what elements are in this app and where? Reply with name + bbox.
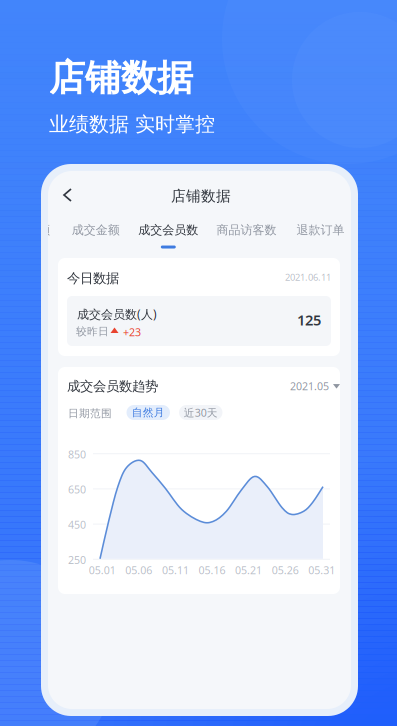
- staticText: 125: [297, 310, 321, 329]
- staticText: 450: [68, 518, 86, 532]
- staticText: 成交金额: [72, 223, 120, 237]
- staticText: 额: [38, 223, 50, 237]
- staticText: 05.21: [235, 563, 262, 577]
- button[interactable]: 额: [8, 217, 80, 243]
- staticText: 05.06: [125, 563, 152, 577]
- staticText: 2021.05: [290, 379, 329, 393]
- button[interactable]: 成交金额: [60, 217, 132, 243]
- staticText: 成交会员数趋势: [67, 378, 158, 394]
- staticText: 自然月: [132, 406, 165, 419]
- staticText: 业绩数据 实时掌控: [49, 112, 215, 137]
- button[interactable]: 近30天: [179, 405, 222, 420]
- staticText: 05.16: [198, 563, 225, 577]
- button[interactable]: 商品访客数: [210, 217, 282, 243]
- staticText: 2021.06.11: [285, 271, 331, 283]
- button[interactable]: 2021.05: [290, 379, 340, 393]
- staticText: 成交会员数: [138, 223, 198, 237]
- staticText: 退款订单: [296, 223, 344, 237]
- staticText: +23: [123, 325, 141, 339]
- staticText: 店铺数据: [49, 56, 193, 100]
- staticText: 今日数据: [67, 270, 119, 286]
- button[interactable]: 自然月: [126, 405, 170, 420]
- staticText: 250: [68, 553, 86, 567]
- button[interactable]: 返回: [54, 181, 82, 209]
- staticText: 店铺数据: [171, 187, 231, 205]
- staticText: 650: [68, 482, 86, 497]
- staticText: 商品访客数: [216, 223, 276, 237]
- staticText: 05.11: [162, 563, 189, 577]
- staticText: 成交会员数(人): [77, 306, 157, 322]
- staticText: 05.01: [89, 563, 116, 577]
- staticText: 近30天: [184, 405, 218, 420]
- staticText: 05.31: [308, 563, 335, 577]
- button[interactable]: 成交会员数: [132, 217, 204, 243]
- staticText: 850: [68, 447, 86, 461]
- button[interactable]: 退款订单: [284, 217, 356, 243]
- staticText: 05.26: [272, 563, 299, 577]
- staticText: 较昨日: [76, 325, 109, 338]
- staticText: 日期范围: [68, 407, 112, 420]
